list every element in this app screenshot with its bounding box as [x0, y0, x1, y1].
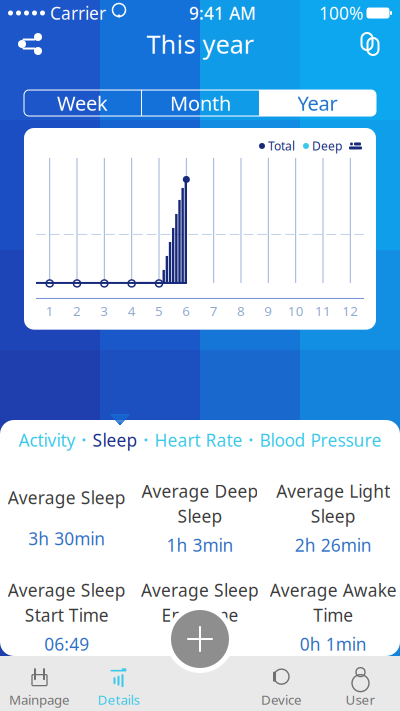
staticText: Sleep	[177, 504, 222, 527]
button[interactable]: Heart Rate	[154, 428, 242, 451]
staticText: Average Awake	[270, 578, 397, 601]
button[interactable]: Add	[166, 605, 234, 673]
staticText: Time	[313, 603, 353, 626]
staticText: Sleep	[311, 504, 356, 527]
staticText: Sleep	[92, 428, 137, 451]
button[interactable]: Share	[8, 24, 52, 64]
staticText: This year	[146, 27, 253, 61]
staticText: 3	[100, 302, 108, 320]
staticText: 9	[264, 302, 272, 320]
staticText: Mainpage	[9, 691, 70, 708]
staticText: Heart Rate	[154, 428, 242, 451]
staticText: 0h 1min	[300, 632, 367, 655]
staticText: Total	[268, 138, 295, 154]
staticText: Blood Pressure	[259, 428, 381, 451]
staticText: Average Light	[276, 479, 390, 502]
staticText: 11	[315, 302, 331, 320]
button[interactable]: Blood Pressure	[259, 428, 381, 451]
button[interactable]: Mainpage	[0, 667, 79, 708]
staticText: End Time	[161, 603, 238, 626]
button[interactable]: Sleep	[92, 428, 137, 451]
staticText: Activity	[18, 428, 75, 451]
button[interactable]: Month	[142, 90, 259, 116]
button[interactable]: Device	[242, 667, 321, 708]
staticText: 100%	[319, 1, 363, 24]
staticText: Carrier	[50, 1, 106, 24]
staticText: 4	[128, 302, 136, 320]
staticText: 2	[73, 302, 81, 320]
staticText: 7	[210, 302, 218, 320]
staticText: 10	[288, 302, 304, 320]
staticText: Start Time	[25, 603, 109, 626]
button[interactable]: Link device	[348, 24, 392, 64]
button[interactable]: Year	[259, 90, 376, 116]
button[interactable]: Details	[79, 667, 158, 708]
staticText: Month	[170, 90, 231, 116]
staticText: 3h 30min	[28, 527, 105, 550]
staticText: 10:20	[177, 632, 222, 655]
staticText: Device	[261, 691, 302, 708]
staticText: Deep	[312, 138, 342, 154]
staticText: 8	[237, 302, 245, 320]
staticText: 9:41 AM	[189, 1, 256, 24]
staticText: 1	[46, 302, 54, 320]
staticText: Week	[57, 90, 108, 116]
staticText: Average Sleep	[8, 486, 126, 509]
staticText: 5	[155, 302, 163, 320]
staticText: 12	[342, 302, 358, 320]
staticText: Average Sleep	[8, 578, 126, 601]
staticText: 06:49	[44, 632, 89, 655]
staticText: User	[345, 691, 375, 708]
staticText: Average Sleep	[141, 578, 259, 601]
staticText: Year	[297, 90, 337, 116]
button[interactable]: User	[321, 667, 400, 708]
staticText: 6	[182, 302, 190, 320]
staticText: 1h 3min	[166, 533, 233, 556]
staticText: Average Deep	[141, 479, 258, 502]
staticText: 2h 26min	[295, 533, 372, 556]
staticText: Details	[97, 691, 139, 708]
button[interactable]: Activity	[18, 428, 75, 451]
button[interactable]: Week	[24, 90, 141, 116]
